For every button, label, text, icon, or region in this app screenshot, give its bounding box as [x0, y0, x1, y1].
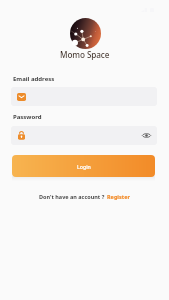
button[interactable]: Show password: [11, 126, 157, 145]
staticText: Login: [77, 163, 91, 170]
button[interactable]: Login: [12, 155, 155, 177]
button[interactable]: Show password: [142, 133, 151, 138]
button[interactable]: Register: [107, 193, 130, 200]
staticText: Momo Space: [60, 49, 110, 60]
staticText: Password: [13, 113, 42, 121]
staticText: Don't have an account ?: [39, 193, 105, 200]
button[interactable]: [11, 87, 157, 106]
staticText: Email address: [13, 75, 55, 83]
staticText: Register: [107, 193, 130, 200]
